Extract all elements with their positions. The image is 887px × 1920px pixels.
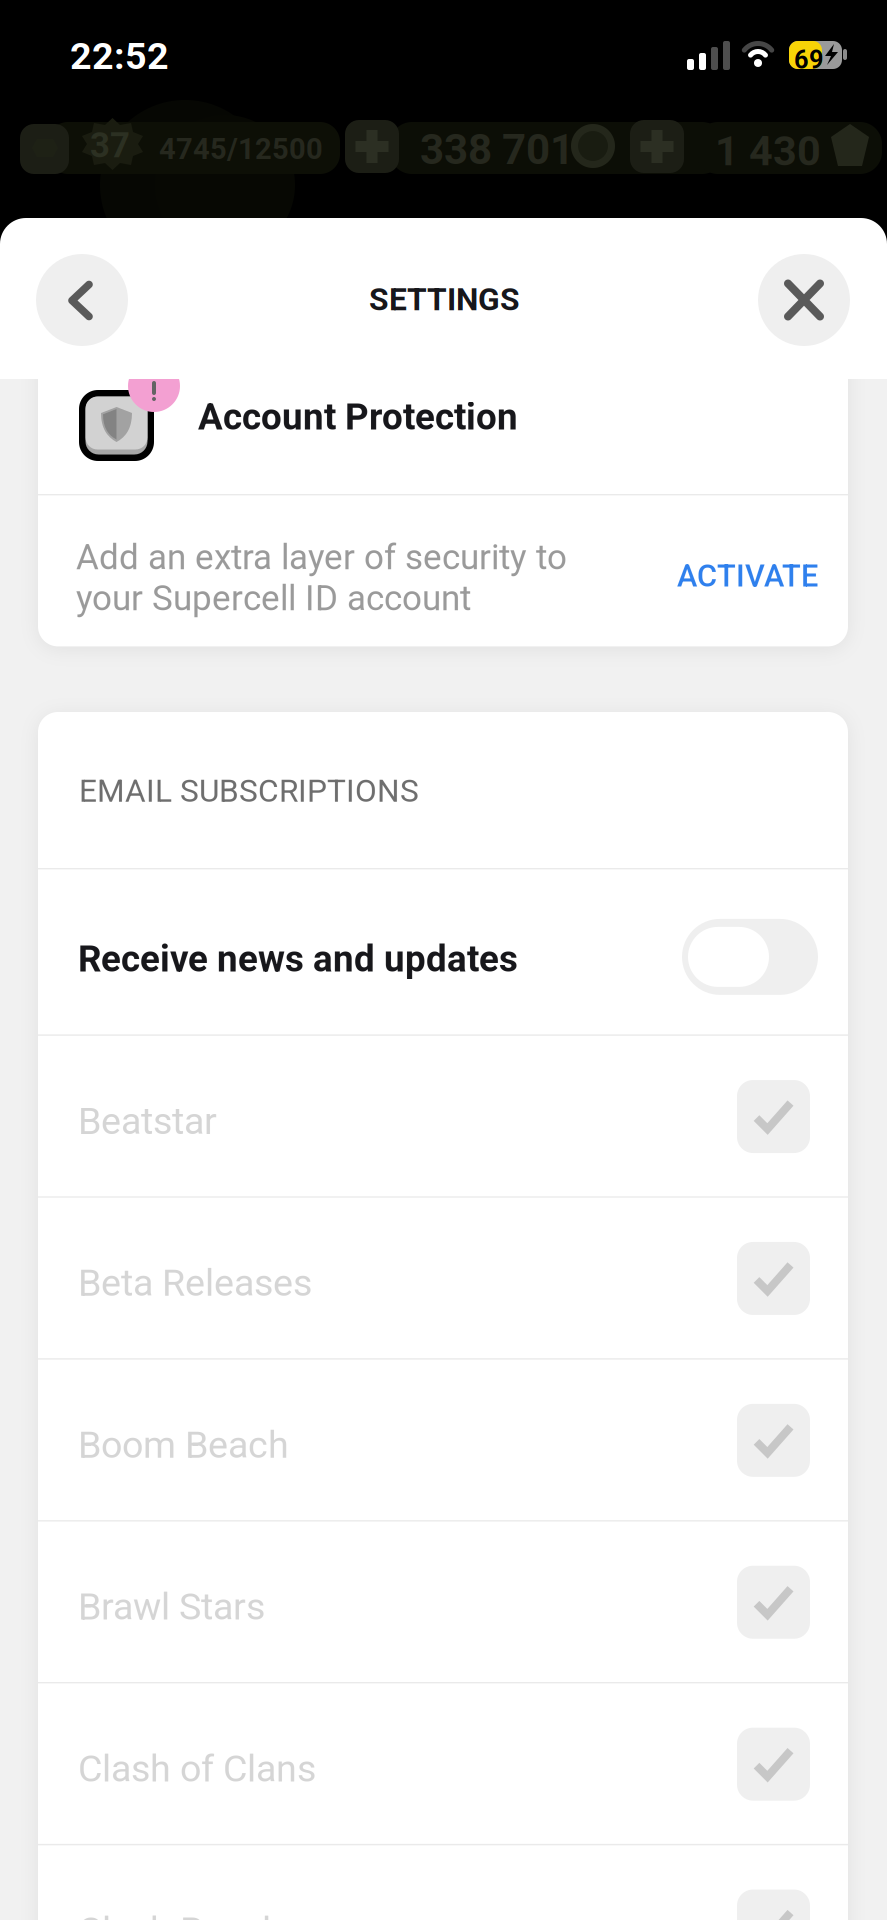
button[interactable]: Clash of Clans	[38, 1683, 848, 1844]
button[interactable]: Back	[36, 254, 128, 346]
button[interactable]: Brawl Stars	[38, 1521, 848, 1682]
staticText: 4745/12500	[159, 132, 323, 166]
staticText: 22:52	[70, 34, 169, 78]
button[interactable]: Receive news and updates	[38, 869, 848, 1034]
button[interactable]: Boom Beach	[38, 1360, 848, 1520]
staticText: 338 701	[420, 125, 574, 174]
staticText: Beta Releases	[78, 1261, 312, 1305]
button[interactable]: Beatstar	[38, 1036, 848, 1196]
staticText: 69	[794, 45, 824, 75]
button[interactable]: Clash Royale	[38, 1845, 848, 1920]
staticText: Account Protection	[198, 395, 518, 438]
staticText: SETTINGS	[369, 281, 520, 318]
button[interactable]: Beta Releases	[38, 1198, 848, 1358]
staticText: Receive news and updates	[78, 937, 518, 980]
staticText: 37	[90, 125, 130, 166]
button[interactable]: ACTIVATE	[669, 531, 826, 611]
staticText: Boom Beach	[78, 1423, 289, 1467]
staticText: Brawl Stars	[78, 1585, 265, 1629]
button[interactable]: Close	[758, 254, 850, 346]
staticText: ACTIVATE	[677, 558, 818, 594]
staticText: EMAIL SUBSCRIPTIONS	[79, 772, 419, 809]
staticText: Beatstar	[78, 1099, 217, 1143]
staticText: Add an extra layer of security to your S…	[76, 537, 567, 619]
staticText: 1 430	[715, 127, 821, 175]
staticText: Clash Royale	[78, 1908, 291, 1920]
staticText: Clash of Clans	[78, 1747, 316, 1791]
button[interactable]: Account Protection	[38, 332, 848, 494]
